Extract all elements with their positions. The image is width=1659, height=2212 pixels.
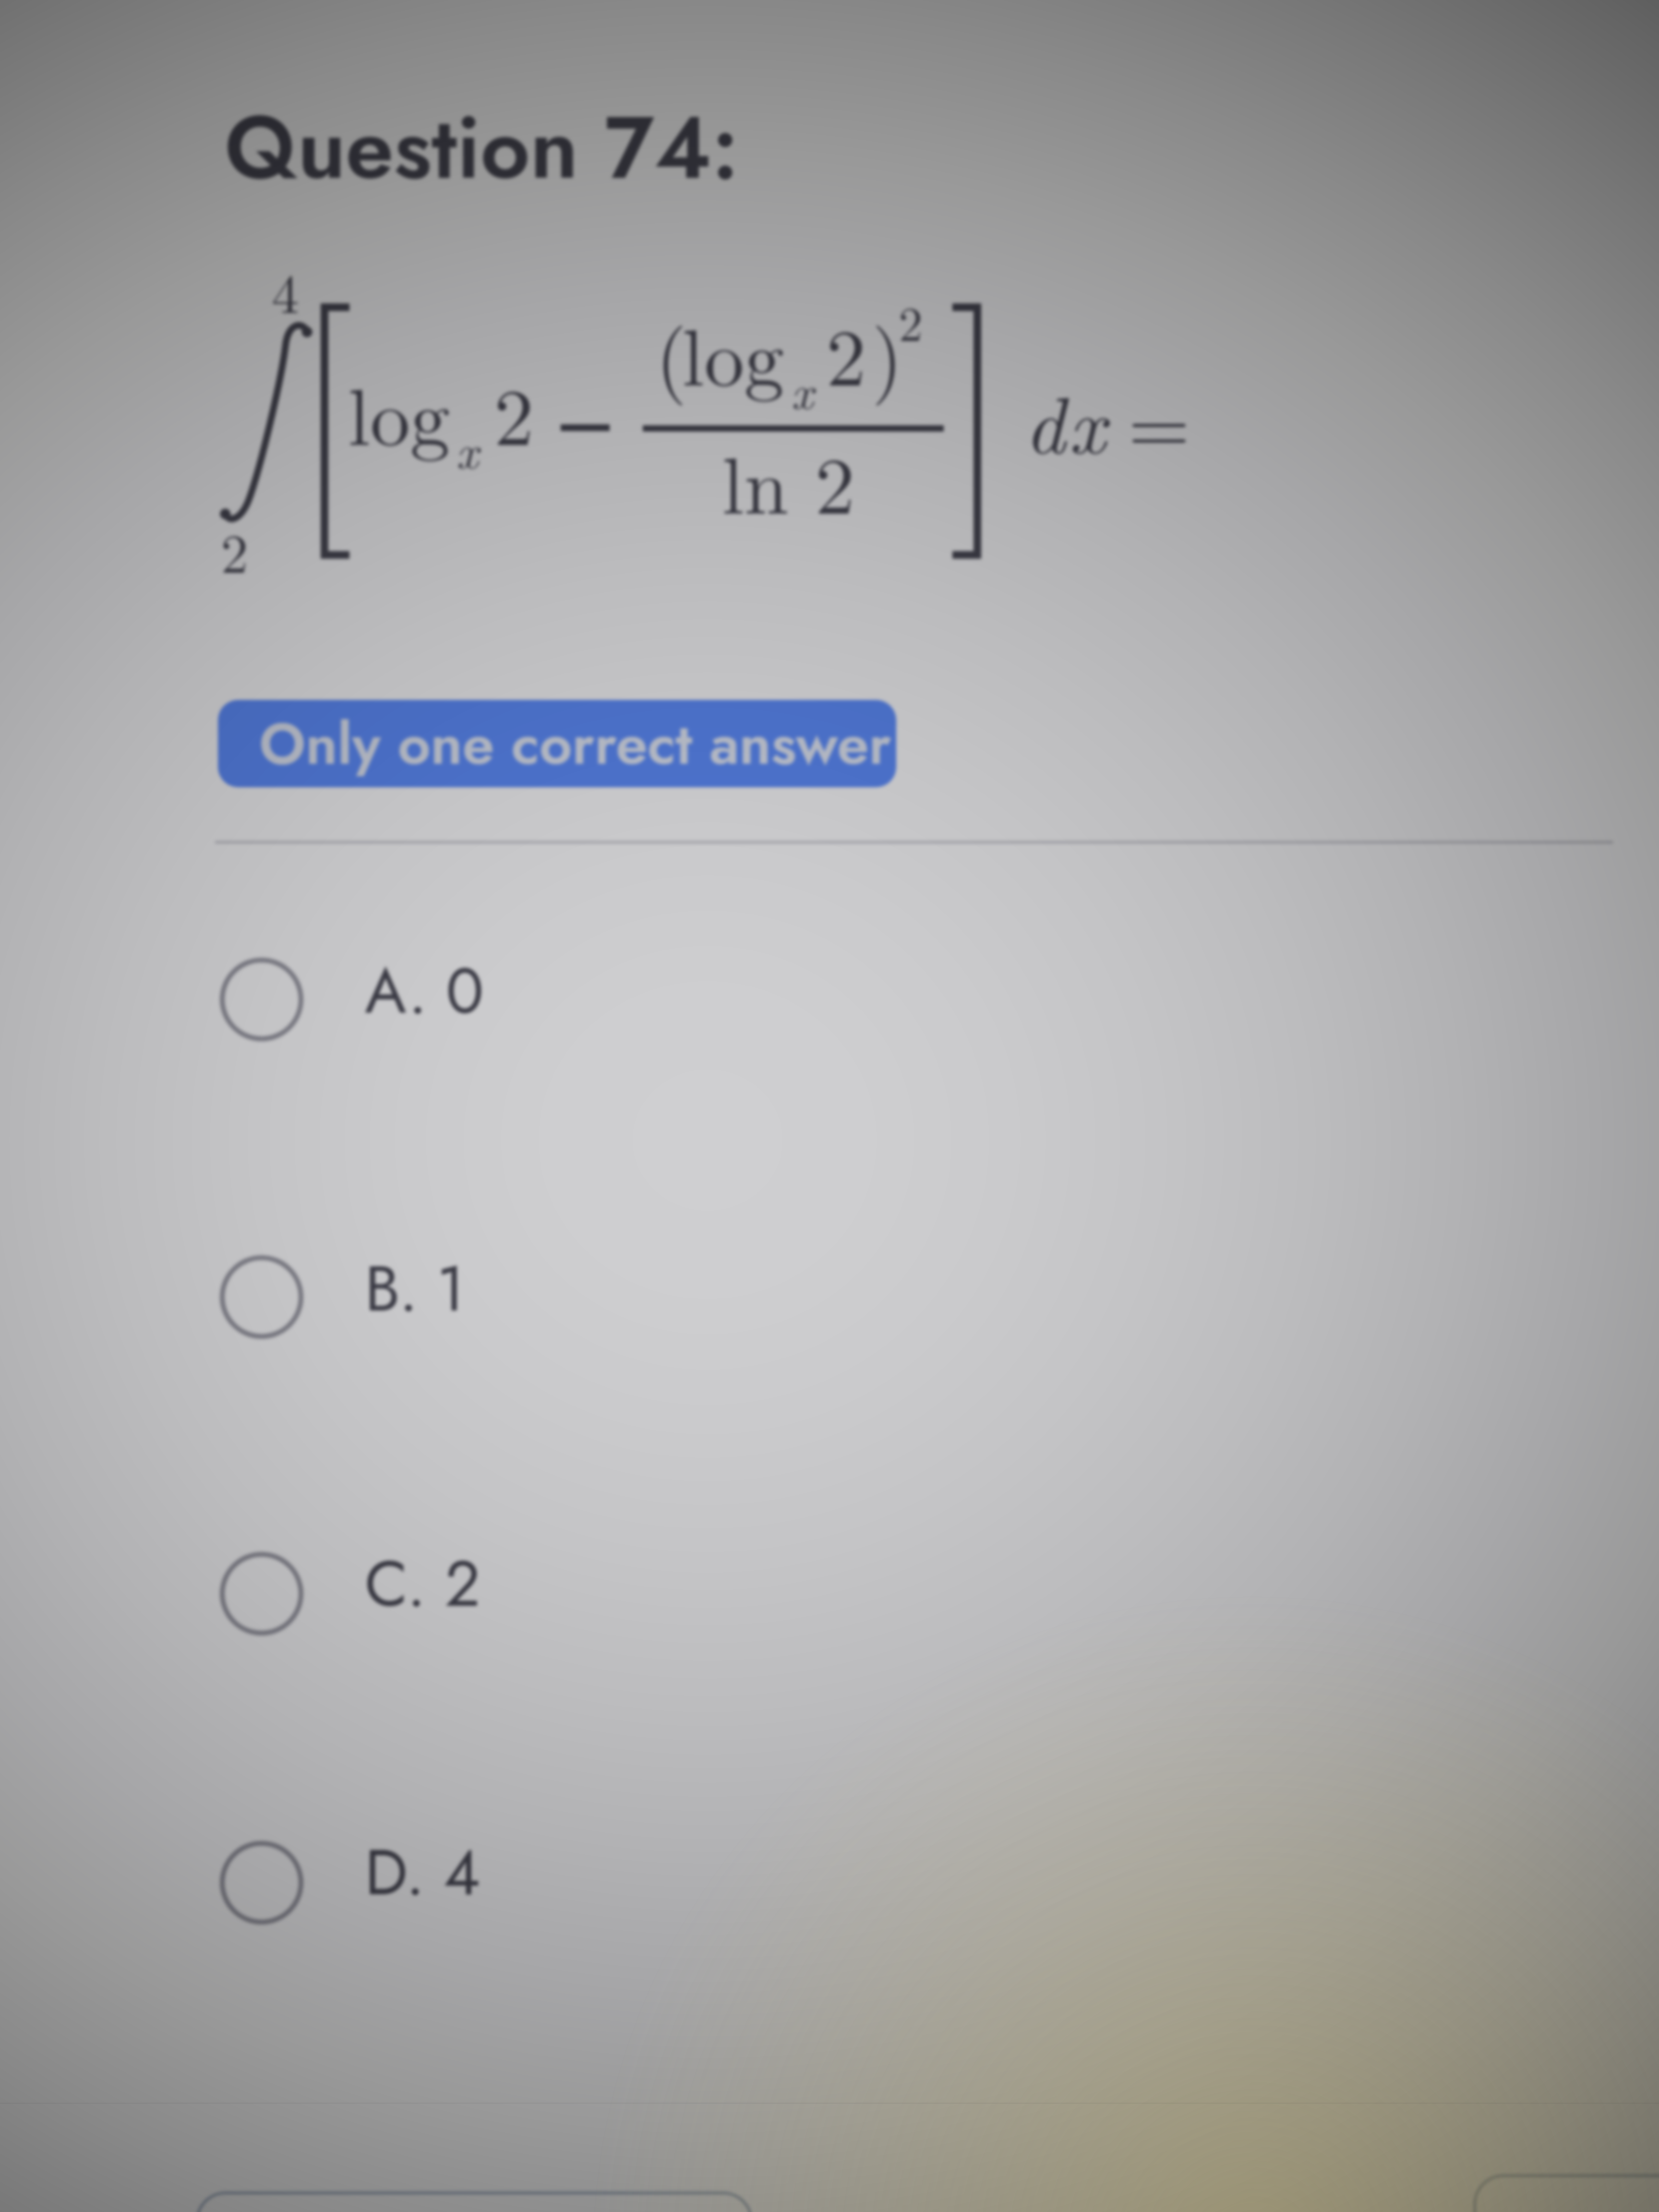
staticText: 4 [272, 252, 300, 329]
button[interactable]: Previous question [196, 2192, 753, 2212]
staticText: log [348, 355, 450, 468]
staticText: d [1024, 363, 1065, 476]
button[interactable]: C. 2 [206, 1479, 1608, 1709]
staticText: 2 [494, 355, 534, 468]
staticText: ( [656, 296, 687, 409]
staticText: Only one correct answer [259, 703, 891, 785]
staticText: = [1128, 363, 1190, 476]
staticText: B. 1 [365, 1243, 465, 1334]
staticText: Question 74: [225, 85, 739, 210]
staticText: log [682, 296, 784, 409]
button[interactable]: B. 1 [206, 1182, 1608, 1412]
staticText: C. 2 [365, 1539, 481, 1629]
button[interactable]: Only one correct answer [218, 700, 896, 787]
staticText: D. 4 [365, 1827, 481, 1918]
staticText: x [1069, 363, 1106, 476]
staticText: 2 [221, 511, 249, 589]
staticText: ) [872, 296, 903, 409]
staticText: 2 [899, 287, 923, 355]
staticText: ln 2 [722, 424, 855, 537]
staticText: A. 0 [365, 946, 484, 1036]
staticText: x [456, 414, 479, 482]
staticText: 2 [826, 296, 866, 409]
staticText: x [791, 355, 814, 423]
button[interactable]: Next question [1474, 2175, 1659, 2212]
button[interactable]: A. 0 [206, 884, 1608, 1115]
button[interactable]: D. 4 [206, 1767, 1608, 1998]
